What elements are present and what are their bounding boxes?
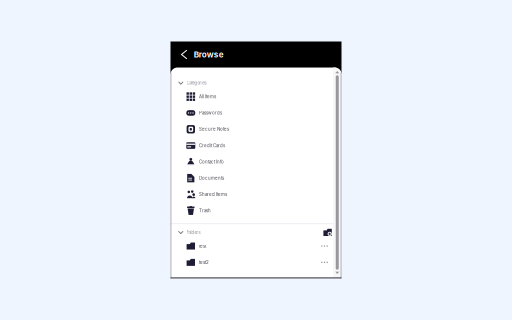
button[interactable]: Passwords: [170, 105, 333, 121]
staticText: Folders: [186, 230, 200, 235]
staticText: Secure Notes: [199, 127, 229, 132]
staticText: test: [199, 243, 206, 249]
staticText: test2: [199, 260, 209, 265]
button[interactable]: Credit Cards: [170, 137, 333, 154]
button[interactable]: test: [170, 238, 333, 254]
button[interactable]: Shared Items: [170, 186, 333, 203]
button[interactable]: Secure Notes: [170, 121, 333, 137]
staticText: Categories: [186, 80, 206, 85]
staticText: Shared Items: [199, 192, 227, 197]
staticText: Contact Info: [199, 159, 224, 164]
staticText: Trash: [199, 208, 211, 213]
button[interactable]: New Folder: [323, 227, 333, 238]
button[interactable]: Trash: [170, 203, 333, 219]
button[interactable]: All Items: [170, 88, 333, 105]
button[interactable]: Contact Info: [170, 154, 333, 170]
button[interactable]: Back: [176, 41, 194, 67]
button[interactable]: Categories: [170, 77, 210, 88]
button[interactable]: test2: [170, 254, 333, 270]
staticText: Documents: [199, 175, 224, 181]
staticText: All Items: [199, 94, 216, 99]
staticText: Credit Cards: [199, 143, 225, 148]
staticText: Browse: [194, 50, 224, 59]
button[interactable]: Documents: [170, 170, 333, 186]
button[interactable]: Folders: [170, 227, 204, 238]
staticText: Passwords: [199, 110, 222, 116]
